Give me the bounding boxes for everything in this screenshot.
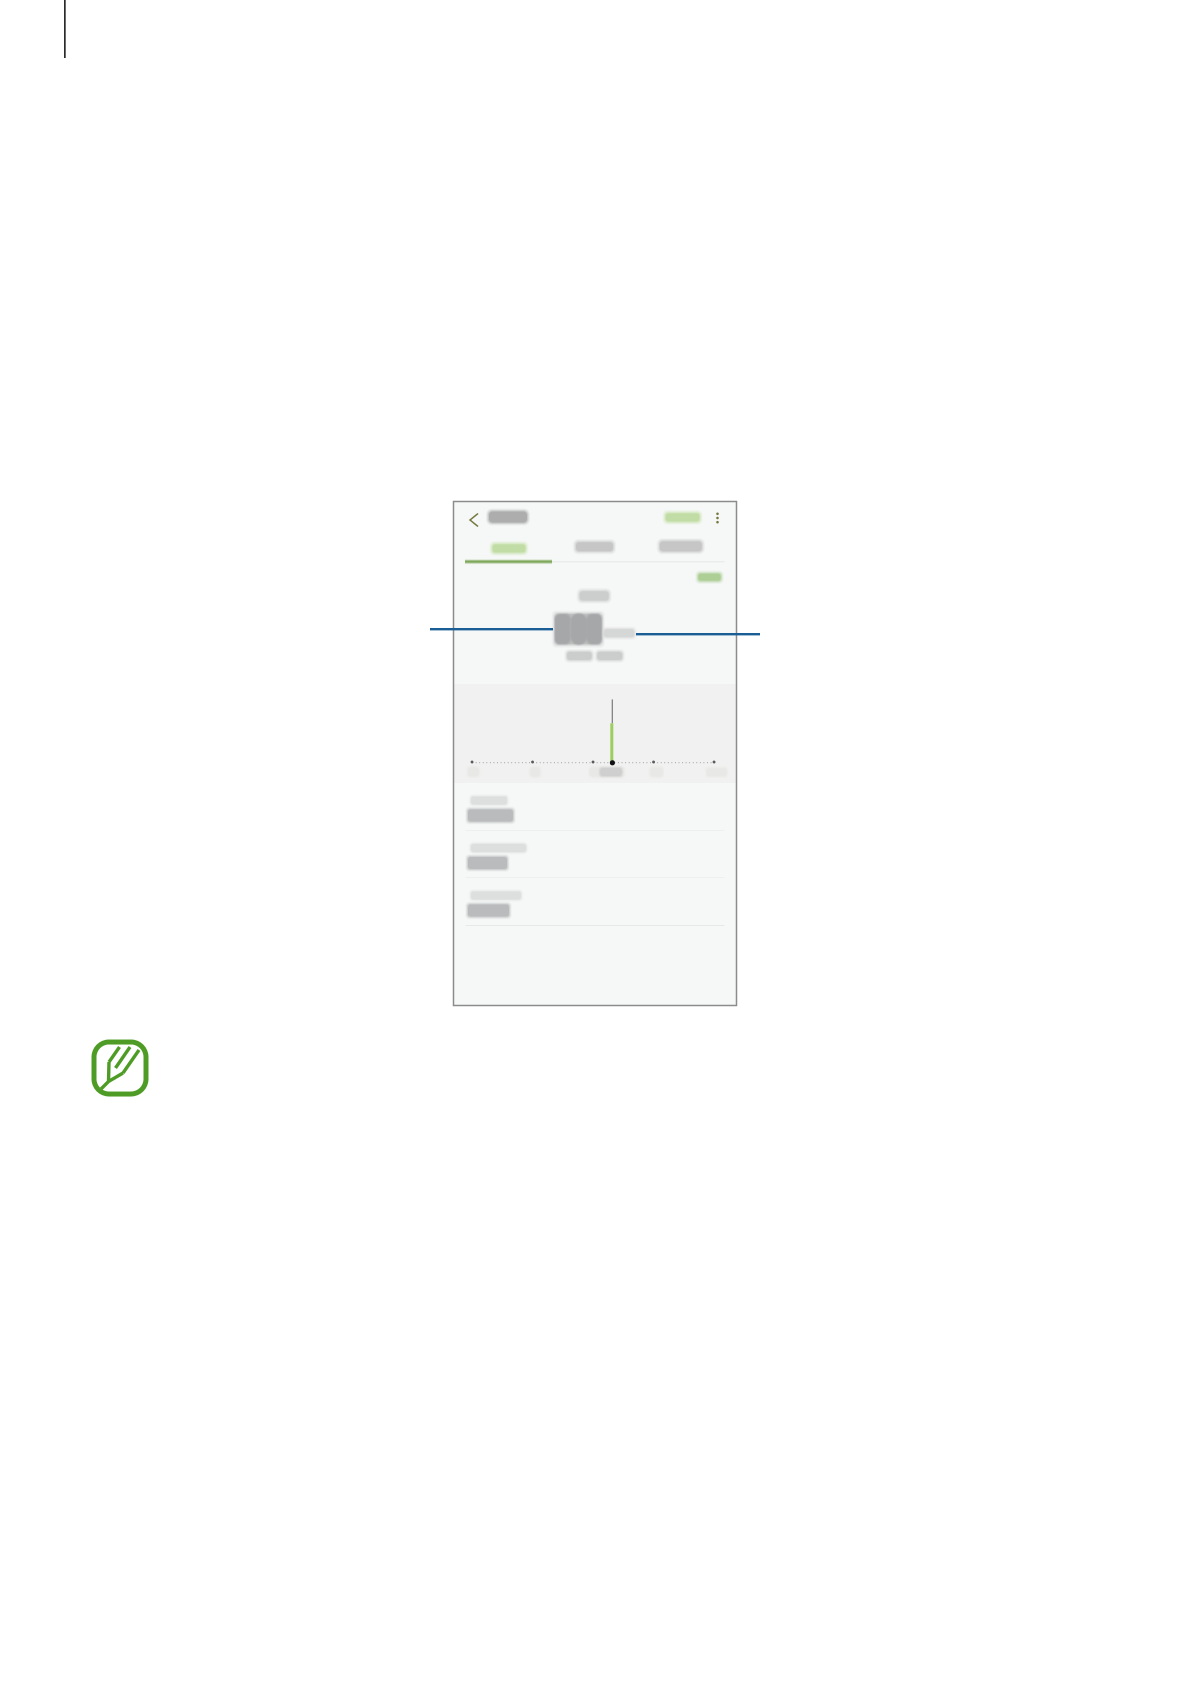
button[interactable]: Statistic: [453, 878, 736, 925]
button[interactable]: Edit: [666, 513, 699, 521]
button[interactable]: Steps tab: [493, 544, 525, 552]
button[interactable]: Back: [467, 510, 481, 529]
button[interactable]: Statistic: [453, 830, 736, 877]
button[interactable]: Statistic: [453, 783, 736, 830]
button[interactable]: Set target: [698, 574, 721, 581]
button[interactable]: More options: [712, 511, 722, 525]
